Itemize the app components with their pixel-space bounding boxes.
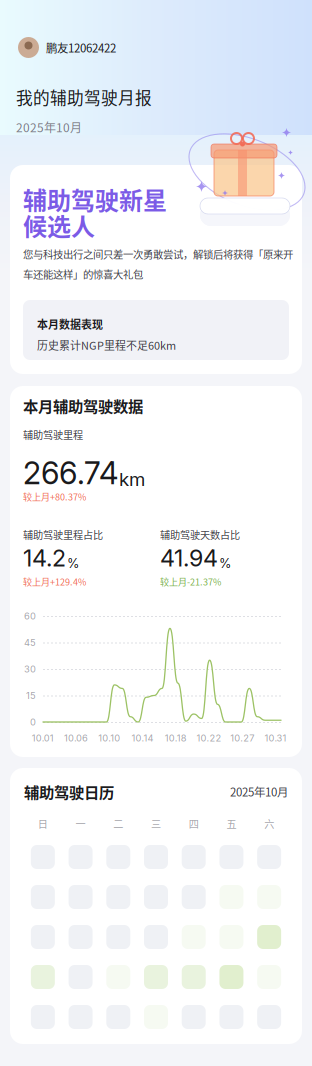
staticText: 鹏友12062422 xyxy=(46,39,116,56)
staticText: 60 xyxy=(24,610,36,622)
staticText: 候选人 xyxy=(23,208,95,242)
staticText: 15 xyxy=(26,690,36,701)
staticText: 41.94 xyxy=(160,544,218,572)
staticText: 45 xyxy=(24,637,36,648)
staticText: 辅助驾驶里程 xyxy=(23,427,83,442)
staticText: 辅助驾驶日历 xyxy=(24,780,114,803)
staticText: 10.10 xyxy=(98,732,120,744)
staticText: 一 xyxy=(76,816,86,831)
staticText: 较上月+80.37% xyxy=(23,490,86,503)
staticText: 10.18 xyxy=(165,732,187,744)
staticText: 10.31 xyxy=(264,732,286,744)
staticText: 2025年10月 xyxy=(230,783,288,800)
staticText: 您与科技出行之间只差一次勇敢尝试，解锁后将获得「原来开 xyxy=(23,246,293,262)
button[interactable]: 鹏友12062422 xyxy=(0,0,198,58)
staticText: 辅助驾驶天数占比 xyxy=(160,527,240,542)
staticText: 三 xyxy=(151,816,161,831)
staticText: 10.01 xyxy=(32,732,54,744)
staticText: 五 xyxy=(226,816,236,831)
staticText: 30 xyxy=(24,663,36,675)
staticText: 辅助驾驶里程占比 xyxy=(23,527,103,542)
staticText: 二 xyxy=(113,816,123,831)
staticText: 我的辅助驾驶月报 xyxy=(16,85,152,109)
staticText: km xyxy=(119,468,145,491)
staticText: 10.27 xyxy=(230,732,254,744)
staticText: % xyxy=(67,556,79,571)
staticText: 10.22 xyxy=(196,732,221,744)
staticText: 本月数据表现 xyxy=(37,316,103,332)
staticText: 辅助驾驶新星 xyxy=(23,182,167,216)
staticText: 较上月+129.4% xyxy=(23,575,86,588)
staticText: % xyxy=(219,556,231,571)
staticText: 本月辅助驾驶数据 xyxy=(23,394,143,417)
staticText: 日 xyxy=(38,816,48,831)
staticText: 六 xyxy=(264,816,274,831)
staticText: 较上月-21.37% xyxy=(160,575,221,588)
staticText: 车还能这样」的惊喜大礼包 xyxy=(23,266,143,282)
staticText: 14.2 xyxy=(23,544,66,572)
staticText: 历史累计NGP里程不足60km xyxy=(37,337,176,353)
staticText: 四 xyxy=(189,816,199,831)
staticText: 2025年10月 xyxy=(16,118,82,136)
staticText: 10.14 xyxy=(131,732,153,744)
staticText: 10.06 xyxy=(64,732,88,744)
staticText: 266.74 xyxy=(23,454,118,491)
staticText: 0 xyxy=(30,716,36,728)
